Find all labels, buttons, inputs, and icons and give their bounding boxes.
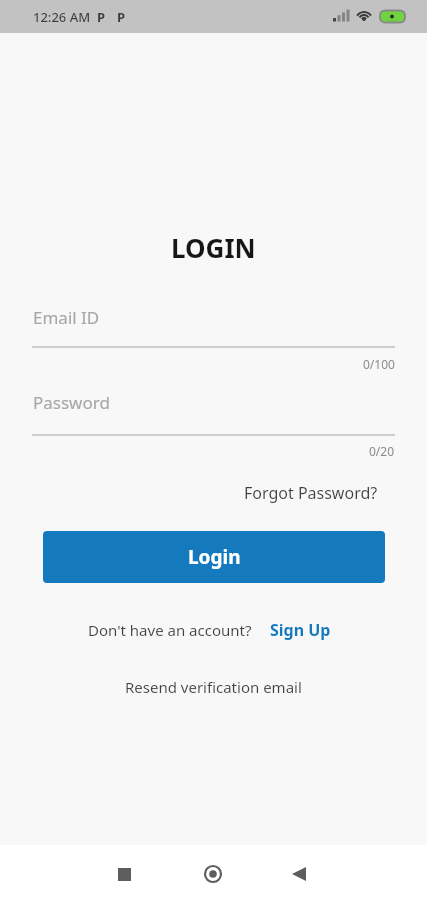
button[interactable]: Forgot Password? [236,478,386,508]
button[interactable]: Sign Up [270,615,331,645]
staticText: Resend verification email [125,677,302,697]
staticText: Password [33,391,110,414]
staticText: 12:26 AM [33,8,91,26]
button[interactable]: Login [43,531,385,583]
staticText: P [97,8,106,26]
button[interactable] [199,860,227,888]
staticText: Email ID [33,306,100,329]
button[interactable] [110,860,138,888]
staticText: 0/20 [369,443,395,459]
staticText: LOGIN [171,230,256,265]
button[interactable]: Resend verification email [117,673,310,701]
staticText: Login [188,544,241,570]
staticText: Sign Up [270,619,331,641]
staticText: Forgot Password? [244,482,378,504]
staticText: 0/100 [363,356,395,372]
staticText: Don't have an account? [88,620,252,640]
staticText: P [117,8,126,26]
button[interactable]: Email ID [32,300,395,348]
button[interactable]: Password [32,388,395,436]
button[interactable] [285,860,313,888]
